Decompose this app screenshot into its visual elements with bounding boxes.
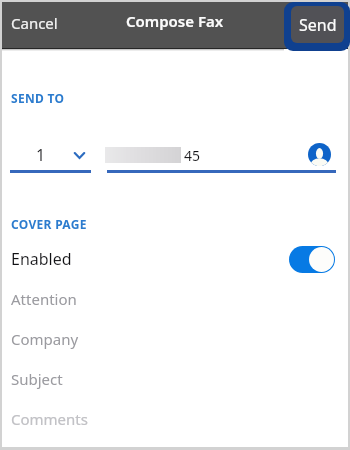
- staticText: 45: [184, 146, 201, 165]
- button[interactable]: Subject: [2, 362, 348, 396]
- staticText: Enabled: [11, 248, 72, 270]
- staticText: Subject: [11, 369, 63, 389]
- button[interactable]: 1: [10, 141, 91, 173]
- button[interactable]: Choose contact: [308, 143, 331, 166]
- button[interactable]: Attention: [2, 282, 348, 316]
- button[interactable]: 45: [105, 141, 336, 173]
- button[interactable]: Enabled: [2, 242, 348, 276]
- button[interactable]: Send: [284, 2, 350, 51]
- staticText: 1: [36, 144, 46, 166]
- button[interactable]: Company: [2, 322, 348, 356]
- staticText: Company: [11, 329, 79, 349]
- button[interactable]: Comments: [2, 402, 348, 436]
- staticText: Compose Fax: [126, 11, 224, 31]
- staticText: SEND TO: [11, 90, 65, 106]
- staticText: Cancel: [11, 13, 58, 33]
- staticText: Comments: [11, 409, 88, 429]
- staticText: Attention: [11, 289, 77, 309]
- button[interactable]: Cancel: [2, 7, 70, 42]
- staticText: Send: [299, 14, 337, 36]
- staticText: COVER PAGE: [11, 216, 87, 232]
